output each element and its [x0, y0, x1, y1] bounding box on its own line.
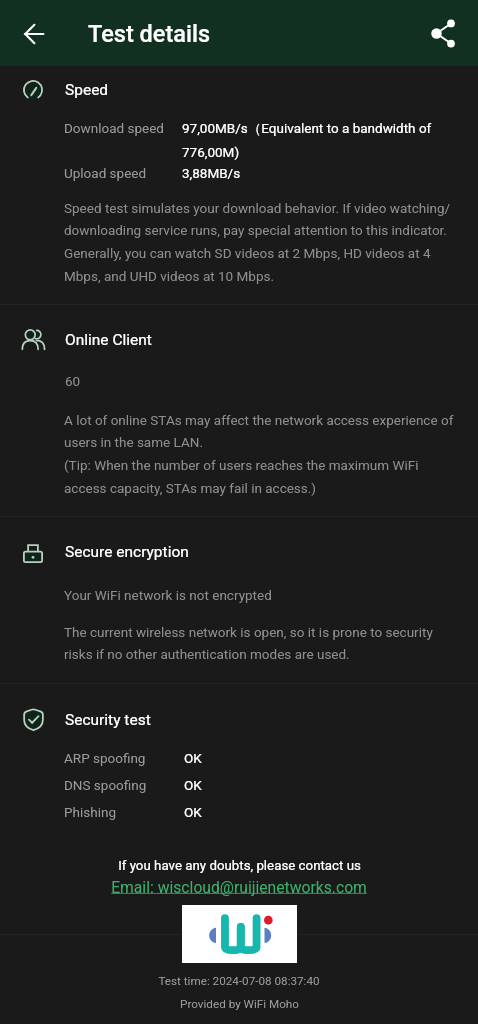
- staticText: OK: [184, 777, 202, 793]
- staticText: Provided by WiFi Moho: [180, 997, 299, 1011]
- button[interactable]: Security test section: [0, 704, 478, 738]
- staticText: Test details: [88, 20, 210, 48]
- staticText: DNS spoofing: [64, 777, 147, 793]
- staticText: Secure encryption: [65, 543, 189, 561]
- button[interactable]: Back: [10, 10, 57, 57]
- staticText: ARP spoofing: [64, 750, 146, 766]
- staticText: 60: [65, 373, 81, 389]
- staticText: Phishing: [64, 804, 116, 820]
- button[interactable]: Online Client section: [0, 324, 478, 358]
- staticText: 3,88MB/s: [182, 165, 241, 181]
- button[interactable]: Speed section: [0, 74, 478, 108]
- staticText: Upload speed: [64, 165, 147, 181]
- button[interactable]: Email: wiscloud@ruijienetworks.com: [111, 878, 367, 896]
- staticText: If you have any doubts, please contact u…: [118, 858, 361, 874]
- staticText: OK: [184, 804, 202, 820]
- button[interactable]: Secure encryption section: [0, 536, 478, 570]
- staticText: Security test: [65, 711, 151, 729]
- staticText: Test time: 2024-07-08 08:37:40: [158, 974, 320, 988]
- staticText: A lot of online STAs may affect the netw…: [64, 412, 456, 496]
- button[interactable]: Share: [420, 10, 467, 57]
- staticText: Speed: [65, 81, 109, 99]
- staticText: Download speed: [64, 120, 164, 136]
- staticText: 97,00MB/s（Equivalent to a bandwidth of 7…: [182, 120, 450, 160]
- staticText: Online Client: [65, 331, 152, 349]
- staticText: Speed test simulates your download behav…: [64, 200, 452, 284]
- staticText: Your WiFi network is not encrypted: [64, 587, 272, 603]
- staticText: OK: [184, 750, 202, 766]
- staticText: The current wireless network is open, so…: [64, 624, 444, 662]
